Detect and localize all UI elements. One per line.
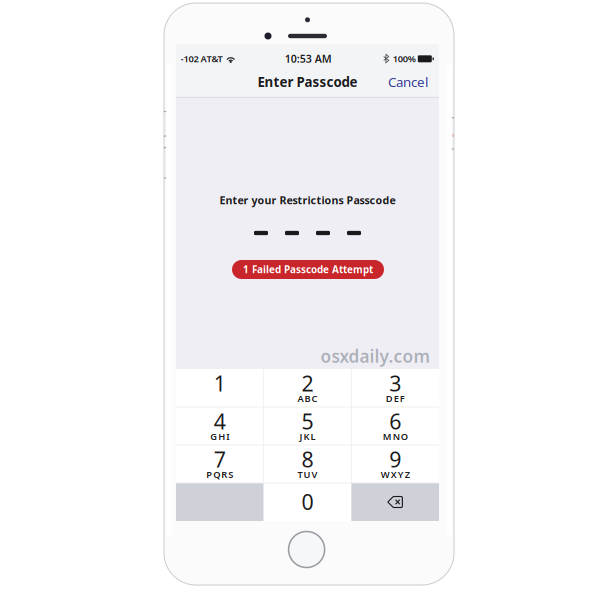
button[interactable]: 9 [351,445,439,483]
button[interactable]: 3 [351,369,439,407]
staticText: PQRS [206,468,233,480]
button[interactable]: 1 [176,369,264,407]
button[interactable]: 6 [351,407,439,445]
staticText: -102 AT&T [180,52,222,65]
staticText: 9 [389,445,401,473]
staticText: 1 Failed Passcode Attempt [243,263,373,276]
button[interactable]: 0 [264,483,351,521]
button[interactable]: 2 [264,369,351,407]
button[interactable]: 1 Failed Passcode Attempt [232,260,384,279]
button[interactable]: Cancel [383,65,433,98]
button[interactable]: Blank [176,483,264,521]
staticText: TUV [297,468,317,480]
staticText: GHI [210,430,229,442]
staticText: WXYZ [381,468,410,480]
button[interactable]: 7 [176,445,264,483]
button[interactable]: 4 [176,407,264,445]
staticText: 8 [301,445,313,473]
staticText: Enter Passcode [257,73,357,91]
staticText: ABC [297,392,317,404]
staticText: 0 [301,488,313,516]
staticText: DEF [386,392,405,404]
staticText: 6 [389,407,401,435]
staticText: 7 [214,445,226,473]
button[interactable]: 8 [264,445,351,483]
button[interactable]: 5 [264,407,351,445]
staticText: osxdaily.com [320,344,430,368]
staticText: 2 [301,369,313,397]
staticText: 100% [393,52,416,65]
staticText: Cancel [388,73,428,91]
staticText: 10:53 AM [285,52,332,66]
staticText: Enter your Restrictions Passcode [219,193,395,207]
staticText: 5 [301,407,313,435]
staticText: 4 [214,407,226,435]
staticText: JKL [299,430,315,442]
staticText: 3 [389,369,401,397]
staticText: MNO [383,430,408,442]
staticText: 1 [214,369,226,397]
button[interactable]: Delete [351,483,439,521]
